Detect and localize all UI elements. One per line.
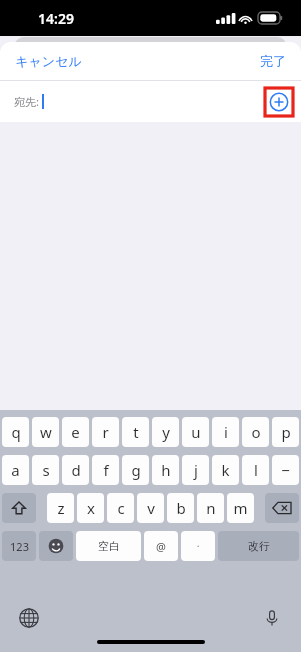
button[interactable]: s: [32, 455, 59, 485]
button[interactable]: v: [137, 493, 164, 523]
button[interactable]: k: [212, 455, 239, 485]
button[interactable]: i: [212, 417, 239, 447]
button[interactable]: q: [2, 417, 29, 447]
button[interactable]: f: [92, 455, 119, 485]
staticText: y: [162, 422, 170, 442]
staticText: j: [194, 460, 198, 480]
button[interactable]: キーボードを切り替え: [17, 606, 41, 630]
staticText: u: [191, 422, 201, 442]
button[interactable]: a: [2, 455, 29, 485]
staticText: 改行: [248, 539, 270, 553]
staticText: x: [87, 498, 95, 518]
button[interactable]: j: [182, 455, 209, 485]
button[interactable]: e: [62, 417, 89, 447]
button[interactable]: 音声入力: [260, 606, 284, 630]
staticText: c: [117, 498, 125, 518]
staticText: −: [281, 460, 290, 480]
button[interactable]: h: [152, 455, 179, 485]
staticText: 14:29: [38, 9, 74, 28]
button[interactable]: 改行: [218, 531, 299, 561]
staticText: 宛先:: [14, 94, 39, 109]
button[interactable]: g: [122, 455, 149, 485]
staticText: h: [161, 460, 171, 480]
button[interactable]: 絵文字: [39, 531, 73, 561]
staticText: ・: [194, 541, 202, 551]
button[interactable]: 空白: [76, 531, 141, 561]
staticText: z: [57, 498, 65, 518]
staticText: w: [40, 422, 52, 442]
button[interactable]: n: [197, 493, 224, 523]
staticText: @: [156, 539, 166, 554]
button[interactable]: −: [272, 455, 299, 485]
staticText: i: [224, 422, 228, 442]
staticText: q: [11, 422, 21, 442]
staticText: t: [133, 422, 139, 442]
button[interactable]: 123: [2, 531, 36, 561]
button[interactable]: w: [32, 417, 59, 447]
button[interactable]: l: [242, 455, 269, 485]
staticText: v: [147, 498, 155, 518]
staticText: 123: [10, 539, 29, 554]
staticText: b: [176, 498, 186, 518]
button[interactable]: d: [62, 455, 89, 485]
staticText: o: [251, 422, 261, 442]
staticText: 完了: [260, 53, 286, 69]
button[interactable]: r: [92, 417, 119, 447]
button[interactable]: c: [107, 493, 134, 523]
button[interactable]: m: [227, 493, 254, 523]
staticText: a: [11, 460, 20, 480]
button[interactable]: x: [77, 493, 104, 523]
staticText: n: [206, 498, 216, 518]
button[interactable]: Shift: [2, 493, 36, 523]
staticText: m: [233, 498, 248, 518]
staticText: l: [254, 460, 258, 480]
button[interactable]: y: [152, 417, 179, 447]
staticText: p: [281, 422, 291, 442]
staticText: e: [71, 422, 80, 442]
button[interactable]: z: [47, 493, 74, 523]
staticText: f: [103, 460, 109, 480]
button[interactable]: キャンセル: [0, 45, 94, 77]
staticText: 空白: [98, 539, 120, 553]
button[interactable]: ・: [181, 531, 215, 561]
staticText: d: [71, 460, 81, 480]
staticText: g: [131, 460, 141, 480]
button[interactable]: 完了: [248, 45, 301, 77]
button[interactable]: 連絡先を追加: [265, 88, 293, 116]
button[interactable]: @: [144, 531, 178, 561]
staticText: キャンセル: [15, 53, 82, 69]
button[interactable]: p: [272, 417, 299, 447]
staticText: s: [42, 460, 50, 480]
staticText: r: [102, 422, 109, 442]
button[interactable]: Backspace: [265, 493, 299, 523]
button[interactable]: u: [182, 417, 209, 447]
button[interactable]: t: [122, 417, 149, 447]
staticText: k: [221, 460, 230, 480]
button[interactable]: b: [167, 493, 194, 523]
button[interactable]: o: [242, 417, 269, 447]
